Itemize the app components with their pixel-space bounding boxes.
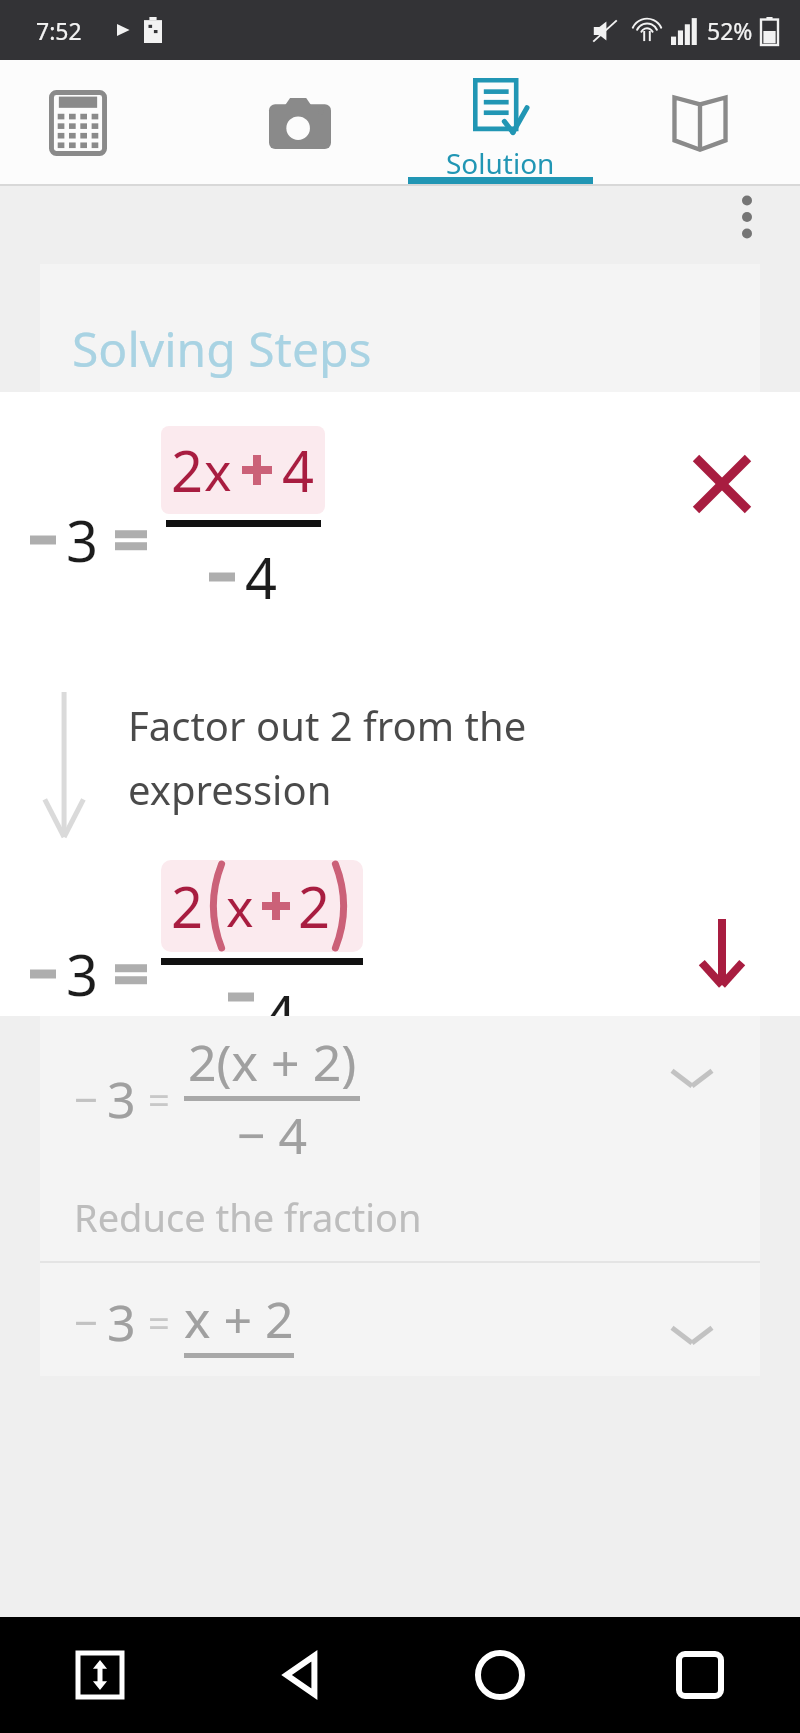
staticText: Solution [446,144,555,182]
button[interactable]: Close [686,448,758,520]
staticText: 3 [107,1065,136,1133]
button[interactable]: Calculator [0,60,200,186]
staticText: 3 [66,936,99,1012]
button[interactable]: Solution [400,60,600,186]
staticText: 2 [171,868,204,944]
staticText: 2 [171,432,204,508]
staticText: Solving Steps [72,316,372,381]
button[interactable]: Back [200,1617,400,1733]
button[interactable]: Home [400,1617,600,1733]
staticText: − [74,1293,99,1350]
staticText: Factor out 2 from the [128,698,527,752]
staticText: 3 [66,502,99,578]
staticText: x [226,871,254,942]
staticText: 52% [707,15,753,46]
staticText: x + 2 [184,1285,294,1353]
staticText: 7:52 [36,15,82,46]
button[interactable]: Recent apps [600,1617,800,1733]
staticText: 4 [245,539,278,615]
staticText: expression [128,762,332,816]
button[interactable]: Camera [200,60,400,186]
staticText: 3 [107,1288,136,1356]
button[interactable]: Textbook [600,60,800,186]
button[interactable]: More options [724,194,770,240]
staticText: 4 [264,977,297,1016]
staticText: 2(x + 2) [188,1028,357,1096]
staticText: x [204,435,232,506]
button[interactable]: Resize [0,1617,200,1733]
staticText: = [148,1296,170,1348]
staticText: = [148,1073,170,1125]
staticText: 4 [282,432,315,508]
staticText: 2 [298,868,331,944]
staticText: − 4 [237,1101,308,1169]
staticText: − [74,1070,99,1127]
button[interactable]: Next step [680,910,764,994]
staticText: Reduce the fraction [74,1191,422,1243]
